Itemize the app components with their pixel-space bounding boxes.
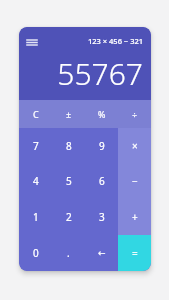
staticText: 8 bbox=[66, 139, 72, 153]
button[interactable]: 5 bbox=[52, 163, 85, 199]
button[interactable]: % bbox=[85, 100, 118, 128]
staticText: 55767 bbox=[57, 53, 143, 94]
staticText: ÷ bbox=[132, 108, 138, 120]
staticText: % bbox=[98, 108, 106, 120]
button[interactable]: + bbox=[118, 199, 151, 235]
button[interactable]: ÷ bbox=[118, 100, 151, 128]
button[interactable]: 7 bbox=[19, 128, 52, 163]
staticText: . bbox=[67, 246, 70, 260]
button[interactable]: 2 bbox=[52, 199, 85, 235]
button[interactable]: 6 bbox=[85, 163, 118, 199]
staticText: + bbox=[132, 210, 138, 224]
button[interactable]: 3 bbox=[85, 199, 118, 235]
staticText: ± bbox=[66, 108, 72, 120]
staticText: 2 bbox=[66, 210, 72, 224]
button[interactable]: 4 bbox=[19, 163, 52, 199]
button[interactable]: × bbox=[118, 128, 151, 163]
button[interactable]: 1 bbox=[19, 199, 52, 235]
button[interactable]: − bbox=[118, 163, 151, 199]
button[interactable]: 8 bbox=[52, 128, 85, 163]
staticText: 4 bbox=[33, 174, 39, 188]
button[interactable]: = bbox=[118, 235, 151, 271]
staticText: − bbox=[132, 174, 138, 188]
staticText: = bbox=[132, 246, 138, 260]
staticText: 6 bbox=[99, 174, 105, 188]
staticText: 1 bbox=[33, 210, 39, 224]
button[interactable]: 0 bbox=[19, 235, 52, 271]
button[interactable]: Menu bbox=[24, 34, 40, 50]
button[interactable]: Backspace bbox=[85, 235, 118, 271]
staticText: 3 bbox=[99, 210, 105, 224]
button[interactable]: . bbox=[52, 235, 85, 271]
button[interactable]: 9 bbox=[85, 128, 118, 163]
staticText: 0 bbox=[33, 246, 39, 260]
staticText: 123 × 456 − 321 bbox=[87, 36, 143, 46]
staticText: × bbox=[132, 139, 138, 153]
button[interactable]: C bbox=[19, 100, 52, 128]
staticText: C bbox=[33, 108, 39, 120]
staticText: 5 bbox=[66, 174, 72, 188]
staticText: 9 bbox=[99, 139, 105, 153]
staticText: 7 bbox=[33, 139, 39, 153]
staticText: ← bbox=[98, 248, 106, 258]
button[interactable]: ± bbox=[52, 100, 85, 128]
